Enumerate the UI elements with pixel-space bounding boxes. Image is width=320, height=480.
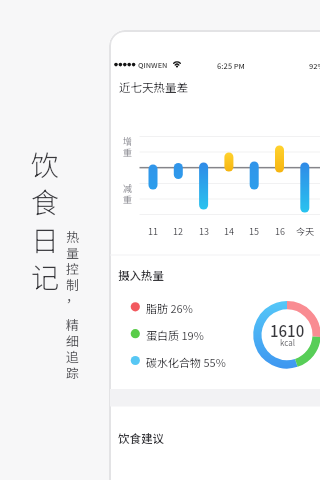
staticText: 记	[31, 256, 60, 296]
staticText: 蛋白质 19%	[146, 327, 204, 341]
staticText: 92%	[309, 60, 320, 71]
staticText: 制	[66, 275, 80, 293]
button[interactable]: 脂肪 26%	[146, 300, 216, 314]
staticText: 近七天热量差	[119, 79, 188, 95]
staticText: 饮食建议	[118, 430, 164, 444]
staticText: 控	[66, 259, 80, 277]
staticText: 重	[123, 193, 133, 205]
button[interactable]: 蛋白质 19%	[146, 327, 226, 341]
staticText: QINWEN	[138, 60, 168, 71]
staticText: ，	[66, 287, 80, 305]
staticText: 热	[66, 227, 80, 245]
staticText: 1610	[270, 320, 305, 340]
button[interactable]: 碳水化合物 55%	[146, 354, 236, 368]
staticText: 重	[123, 146, 133, 158]
staticText: 饮	[31, 144, 60, 184]
staticText: 细	[66, 331, 80, 349]
button[interactable]: 近七天热量差	[119, 79, 209, 95]
staticText: 踪	[66, 363, 80, 381]
staticText: 11	[148, 225, 158, 237]
staticText: 15	[249, 225, 259, 237]
staticText: 减	[123, 182, 133, 194]
staticText: 脂肪 26%	[146, 300, 193, 314]
staticText: kcal	[280, 337, 295, 349]
staticText: 增	[123, 135, 133, 147]
staticText: 摄入热量	[118, 267, 164, 281]
staticText: 14	[224, 225, 234, 237]
staticText: 量	[66, 243, 80, 261]
staticText: 食	[31, 181, 60, 221]
staticText: 日	[31, 219, 60, 259]
staticText: 今天	[296, 225, 315, 237]
staticText: 追	[66, 347, 80, 365]
staticText: 12	[173, 225, 183, 237]
staticText: 6:25 PM	[217, 60, 245, 71]
staticText: 碳水化合物 55%	[146, 354, 226, 368]
staticText: 16	[275, 225, 285, 237]
staticText: 13	[199, 225, 209, 237]
button[interactable]: 饮食建议	[118, 430, 188, 444]
staticText: 精	[66, 315, 80, 333]
